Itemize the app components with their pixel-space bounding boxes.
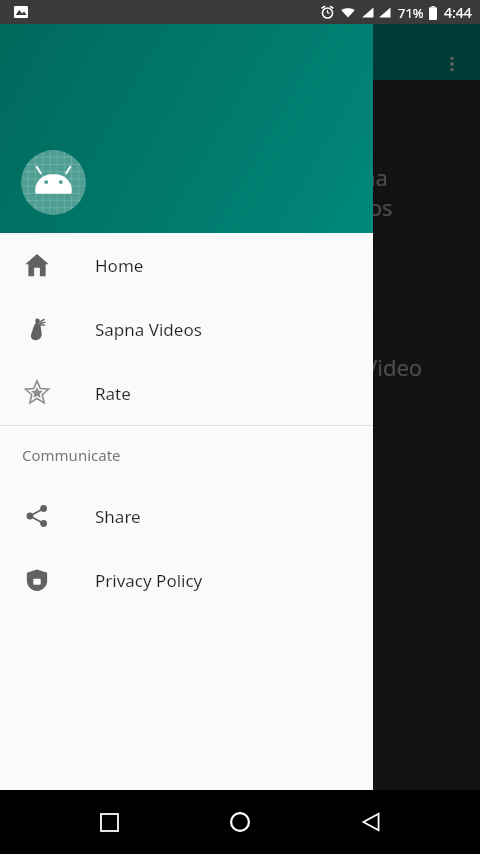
button[interactable]: Privacy Policy: [0, 548, 373, 612]
staticText: 71%: [398, 4, 424, 22]
staticText: Sapna Videos: [324, 162, 456, 222]
button[interactable]: Back: [347, 798, 395, 846]
button[interactable]: More options: [432, 44, 472, 84]
staticText: Rate: [95, 382, 131, 405]
staticText: Privacy Policy: [95, 569, 203, 592]
button[interactable]: Sapna Videos: [0, 297, 373, 361]
staticText: Sapna Videos: [95, 318, 202, 341]
button[interactable]: Video: [24, 308, 456, 425]
button[interactable]: Home: [0, 233, 373, 297]
button[interactable]: Rate: [0, 361, 373, 425]
staticText: Video: [364, 352, 423, 382]
button[interactable]: Sapna Videos: [24, 133, 456, 250]
staticText: Home: [95, 254, 144, 277]
staticText: 4:44: [444, 3, 472, 22]
staticText: Share: [95, 505, 141, 528]
staticText: Communicate: [22, 445, 121, 465]
button[interactable]: Recent apps: [85, 798, 133, 846]
button[interactable]: Profile avatar: [21, 150, 86, 215]
button[interactable]: Share: [0, 484, 373, 548]
button[interactable]: Home: [216, 798, 264, 846]
